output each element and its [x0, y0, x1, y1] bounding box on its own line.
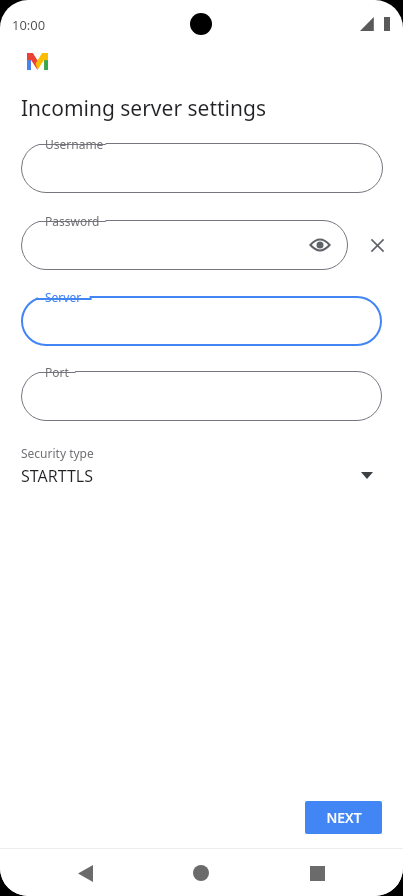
staticText: Server — [45, 289, 82, 305]
staticText: 10:00 — [12, 16, 46, 34]
button[interactable]: Password — [21, 220, 348, 270]
button[interactable]: Show password — [302, 227, 338, 263]
staticText: Incoming server settings — [21, 94, 266, 123]
button[interactable]: Username — [21, 143, 383, 193]
staticText: STARTTLS — [21, 465, 94, 487]
button[interactable]: Recent apps — [300, 856, 334, 890]
button[interactable]: Clear password — [360, 228, 394, 262]
staticText: Password — [45, 213, 100, 229]
button[interactable]: Server — [21, 296, 382, 346]
staticText: Port — [45, 364, 69, 380]
button[interactable]: NEXT — [305, 801, 382, 834]
staticText: Security type — [21, 445, 94, 461]
staticText: Username — [45, 136, 104, 152]
button[interactable]: Security type — [0, 443, 403, 499]
button[interactable]: Home — [184, 856, 218, 890]
button[interactable]: Back — [68, 856, 102, 890]
button[interactable]: Port — [21, 371, 382, 421]
staticText: NEXT — [326, 808, 362, 827]
